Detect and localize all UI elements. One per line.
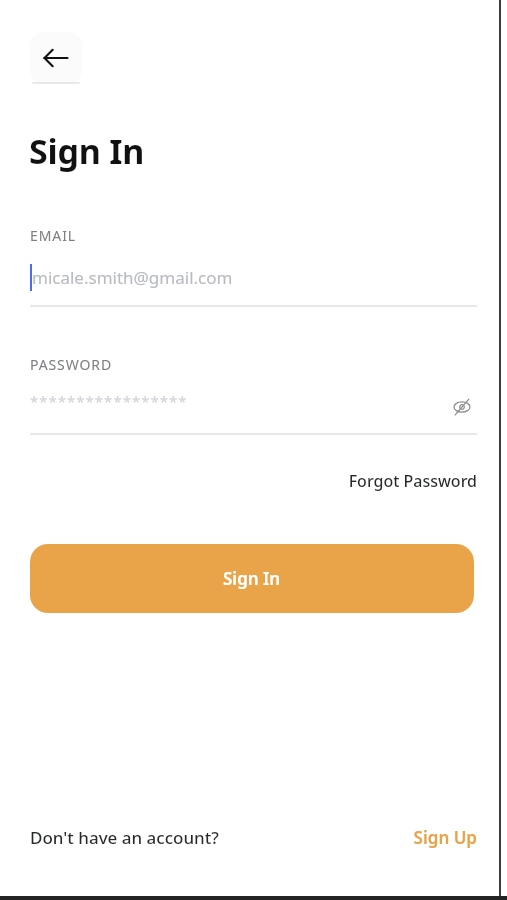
- button[interactable]: *****************: [30, 386, 477, 433]
- staticText: micale.smith@gmail.com: [32, 266, 233, 289]
- button[interactable]: Back: [30, 32, 82, 84]
- staticText: EMAIL: [30, 226, 77, 245]
- staticText: *****************: [30, 391, 188, 411]
- button[interactable]: Show password: [446, 391, 477, 422]
- staticText: PASSWORD: [30, 355, 113, 374]
- button[interactable]: Sign In: [30, 544, 474, 613]
- button[interactable]: Forgot Password: [317, 466, 477, 496]
- staticText: Sign Up: [413, 826, 477, 849]
- button[interactable]: micale.smith@gmail.com: [30, 258, 477, 305]
- button[interactable]: Sign Up: [220, 815, 477, 859]
- staticText: Sign In: [223, 567, 281, 590]
- staticText: Sign In: [29, 128, 145, 174]
- staticText: Forgot Password: [348, 470, 477, 492]
- staticText: Don't have an account?: [30, 826, 219, 849]
